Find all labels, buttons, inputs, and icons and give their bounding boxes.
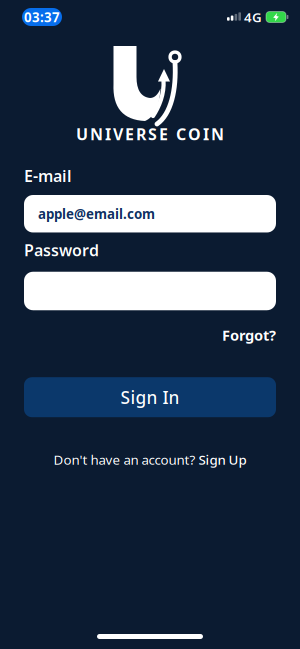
staticText: UNIVERSE COIN — [76, 123, 224, 145]
button[interactable]: Password text field — [24, 272, 276, 310]
staticText: 4G — [244, 8, 262, 26]
staticText: apple@email.com — [38, 205, 155, 223]
button[interactable]: E-mail text field — [24, 195, 276, 232]
button[interactable]: Don't have an account? Sign Up — [53, 451, 246, 468]
staticText: Don't have an account? Sign Up — [53, 451, 246, 468]
staticText: 03:37 — [24, 8, 60, 26]
staticText: Password — [24, 239, 99, 261]
button[interactable]: Forgot? — [222, 325, 276, 345]
staticText: Sign In — [120, 386, 179, 409]
button[interactable]: Sign In — [24, 377, 276, 417]
staticText: Forgot? — [222, 325, 276, 345]
staticText: E-mail — [24, 165, 72, 186]
